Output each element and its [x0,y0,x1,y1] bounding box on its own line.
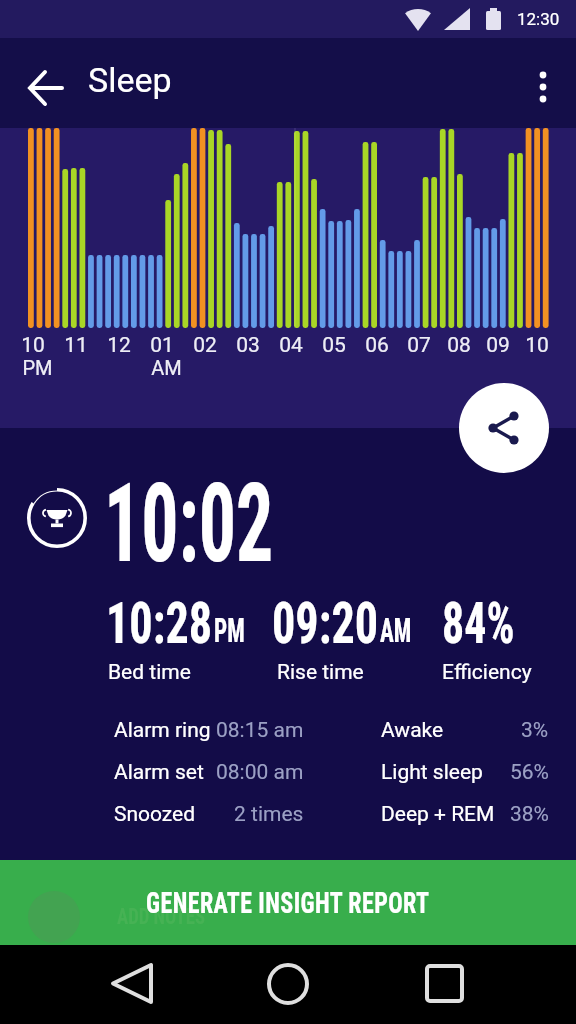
staticText: 10 [21,333,45,358]
button[interactable] [256,959,320,1009]
staticText: 11 [64,333,88,358]
staticText: 08:15 am [216,718,304,743]
button[interactable]: ADD NOTES [0,860,576,945]
staticText: AM [151,356,182,379]
staticText: 04 [279,333,303,358]
staticText: GENERATE INSIGHT REPORT [146,886,430,920]
button[interactable] [100,959,164,1009]
staticText: 12 [107,333,131,358]
staticText: 08:00 am [216,760,304,785]
staticText: ADD NOTES [117,904,205,930]
staticText: Awake [381,718,444,743]
staticText: 08 [447,333,471,358]
staticText: 84% [442,590,515,657]
staticText: 03 [236,333,260,358]
staticText: PM [22,356,53,379]
staticText: Light sleep [381,760,483,785]
staticText: Bed time [108,660,191,685]
staticText: 09 [486,333,510,358]
button[interactable] [459,383,549,473]
staticText: 10:02 [104,459,273,588]
staticText: 10 [525,333,549,358]
staticText: 07 [407,333,431,358]
staticText: 06 [365,333,389,358]
staticText: Deep + REM [381,802,495,827]
staticText: PM [214,611,245,650]
staticText: Alarm set [114,760,204,785]
staticText: Rise time [277,660,364,685]
staticText: 2 times [234,802,304,827]
staticText: Alarm ring [114,718,211,743]
staticText: 38% [510,802,549,827]
button[interactable] [412,959,476,1009]
staticText: 56% [510,760,549,785]
button[interactable] [522,66,566,110]
staticText: 10:28 [106,590,212,657]
staticText: 3% [521,718,549,743]
staticText: 09:20 [272,590,378,657]
staticText: Sleep [88,60,172,100]
staticText: 01 [150,333,174,358]
staticText: 02 [193,333,217,358]
staticText: 05 [322,333,346,358]
staticText: Snoozed [114,802,196,827]
button[interactable] [18,71,74,115]
staticText: AM [380,611,411,650]
staticText: 12:30 [517,9,560,29]
staticText: Efficiency [442,660,532,685]
